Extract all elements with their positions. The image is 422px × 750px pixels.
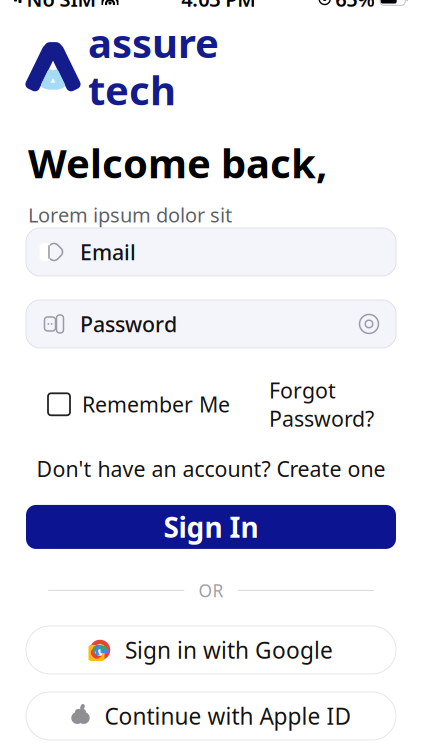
staticText: Lorem ipsum dolor sit <box>28 201 232 228</box>
staticText: Password <box>80 310 177 338</box>
button[interactable]: Don't have an account? Create one <box>36 451 385 487</box>
button[interactable]: Sign In <box>26 505 396 549</box>
button[interactable]: Continue with Apple ID <box>26 692 396 740</box>
staticText: Remember Me <box>82 390 230 418</box>
staticText: Don't have an account? Create one <box>36 455 385 483</box>
button[interactable]: Email <box>26 228 396 276</box>
staticText: assure <box>88 16 219 69</box>
staticText: Forgot Password? <box>269 376 374 433</box>
staticText: Email <box>80 238 136 266</box>
staticText: Continue with Apple ID <box>104 701 351 731</box>
staticText: 4:03 PM <box>181 0 256 12</box>
staticText: Welcome back, <box>28 136 327 189</box>
button[interactable]: Remember Me <box>48 386 230 422</box>
button[interactable]: Forgot Password? <box>269 372 374 437</box>
button[interactable]: Sign in with Google <box>26 626 396 674</box>
staticText: OR <box>198 579 223 602</box>
staticText: tech <box>88 63 176 116</box>
staticText: Sign in with Google <box>125 635 333 665</box>
staticText: Sign In <box>163 508 258 546</box>
button[interactable]: Password <box>26 300 396 348</box>
staticText: 65% <box>335 0 375 12</box>
staticText: No SIM <box>26 0 96 12</box>
